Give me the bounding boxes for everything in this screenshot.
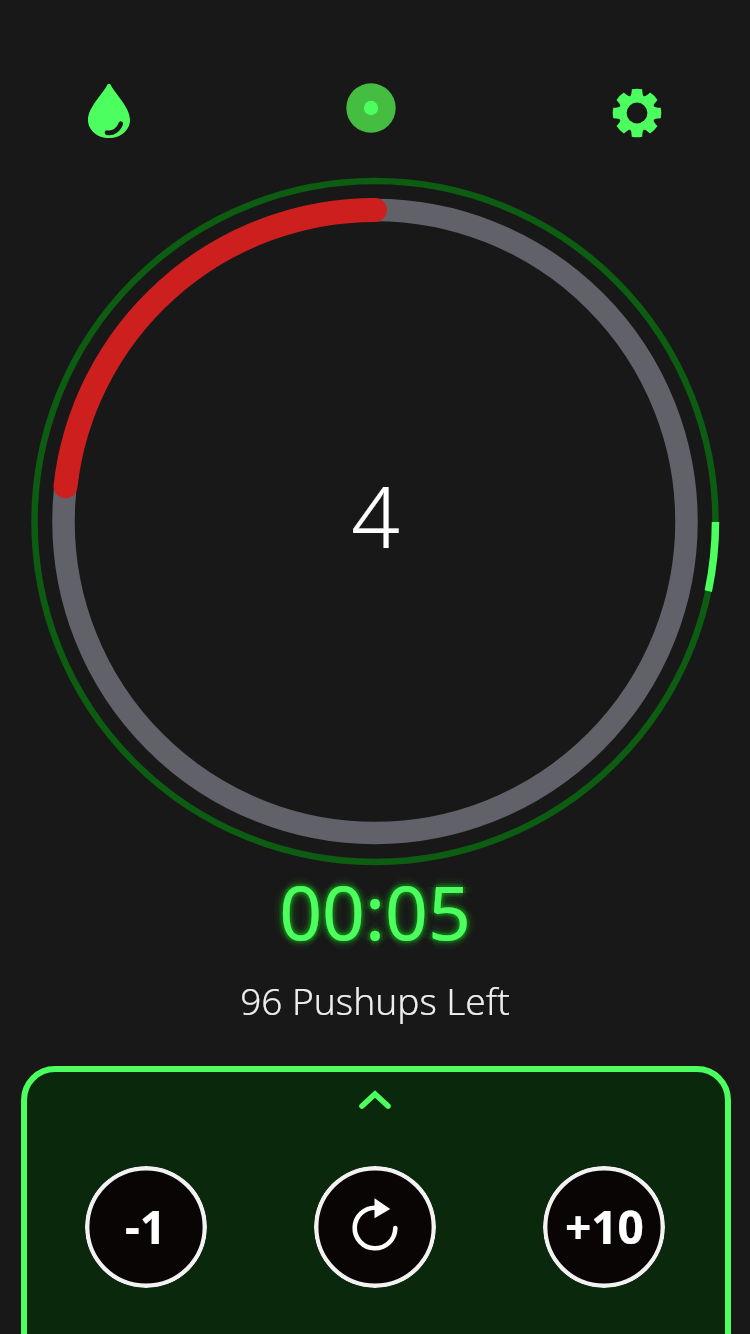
staticText: 00:05: [288, 860, 480, 962]
staticText: 00:05: [279, 857, 471, 959]
staticText: 00:05: [277, 862, 469, 964]
staticText: 96 Pushups Left: [240, 975, 510, 1025]
button[interactable]: [21, 1066, 731, 1334]
button[interactable]: Restart: [314, 1166, 436, 1288]
staticText: 00:05: [281, 858, 473, 960]
staticText: 00:05: [270, 860, 462, 962]
staticText: 00:05: [279, 869, 471, 971]
staticText: -1: [125, 1195, 167, 1258]
staticText: 00:05: [277, 858, 469, 960]
staticText: 00:05: [283, 856, 475, 958]
staticText: 00:05: [276, 860, 468, 962]
staticText: 00:05: [279, 851, 471, 953]
staticText: 4: [351, 457, 400, 573]
button[interactable]: Decrease by one: [85, 1166, 207, 1288]
staticText: +10: [565, 1195, 644, 1258]
staticText: 00:05: [275, 864, 467, 966]
staticText: 00:05: [279, 866, 471, 968]
button[interactable]: Settings: [601, 77, 673, 149]
staticText: 00:05: [275, 856, 467, 958]
staticText: 00:05: [282, 860, 474, 962]
button[interactable]: Expand controls: [335, 1078, 415, 1122]
staticText: 00:05: [279, 863, 471, 965]
staticText: 00:05: [285, 860, 477, 962]
button[interactable]: Increase by ten: [543, 1166, 665, 1288]
staticText: 00:05: [279, 854, 471, 956]
staticText: 00:05: [273, 860, 465, 962]
button[interactable]: Hydration: [73, 75, 145, 147]
button[interactable]: Start: [335, 72, 407, 144]
staticText: 00:05: [283, 864, 475, 966]
staticText: 00:05: [279, 860, 471, 962]
staticText: 00:05: [281, 862, 473, 964]
